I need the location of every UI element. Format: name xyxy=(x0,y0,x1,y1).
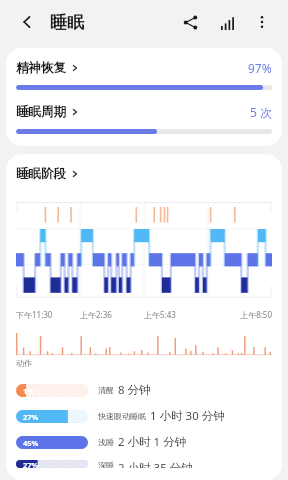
button[interactable]: More options xyxy=(250,10,274,34)
button[interactable]: 1% xyxy=(16,382,272,398)
button[interactable]: 睡眠阶段 xyxy=(16,166,79,182)
button[interactable]: Statistics xyxy=(214,8,242,36)
staticText: 97% xyxy=(248,60,272,76)
staticText: 清醒 xyxy=(98,385,114,395)
staticText: 上午5:43 xyxy=(144,309,208,320)
staticText: 深睡 xyxy=(98,460,114,468)
staticText: 快速眼动睡眠 xyxy=(98,411,146,421)
staticText: 27% xyxy=(23,412,39,422)
staticText: 1% xyxy=(23,386,35,396)
button[interactable]: 27% xyxy=(16,408,272,424)
staticText: 上午8:50 xyxy=(208,309,272,320)
button[interactable]: 45% xyxy=(16,434,272,450)
staticText: 睡眠阶段 xyxy=(16,166,66,182)
staticText: 睡眠 xyxy=(50,12,84,33)
button[interactable]: Back xyxy=(14,9,40,35)
staticText: 2 小时 35 分钟 xyxy=(118,460,193,468)
staticText: 下午11:30 xyxy=(16,309,80,320)
staticText: 动作 xyxy=(16,358,32,368)
staticText: 1 小时 30 分钟 xyxy=(150,408,225,424)
staticText: 睡眠周期 xyxy=(16,104,66,120)
staticText: 8 分钟 xyxy=(118,382,151,398)
staticText: 27% xyxy=(23,460,39,468)
staticText: 5 次 xyxy=(250,104,272,120)
button[interactable]: Share xyxy=(176,8,204,36)
button[interactable]: 27% xyxy=(16,460,272,468)
button[interactable]: 精神恢复 xyxy=(16,60,272,90)
staticText: 2 小时 1 分钟 xyxy=(118,434,187,450)
staticText: 浅睡 xyxy=(98,437,114,447)
staticText: 上午2:36 xyxy=(80,309,144,320)
button[interactable]: 睡眠周期 xyxy=(16,104,272,134)
staticText: 精神恢复 xyxy=(16,60,66,76)
staticText: 45% xyxy=(23,438,39,448)
